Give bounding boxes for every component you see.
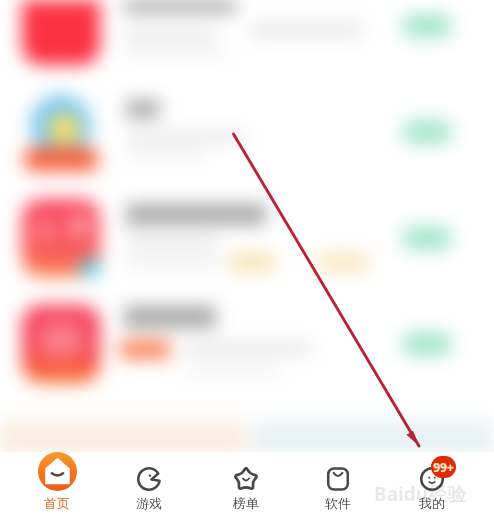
staticText: 首页 <box>44 495 70 511</box>
button[interactable]: 榜单 <box>201 452 291 519</box>
button[interactable]: 首页 <box>12 452 102 519</box>
button[interactable] <box>0 0 494 79</box>
other: 我的 <box>420 467 444 491</box>
button[interactable] <box>0 291 494 397</box>
other: 首页 <box>38 452 77 491</box>
button[interactable]: 游戏 <box>104 452 194 519</box>
button[interactable]: 软件 <box>293 452 383 519</box>
button[interactable]: 我的 <box>387 452 477 519</box>
button[interactable] <box>0 185 494 291</box>
staticText: 榜单 <box>233 495 259 511</box>
other: 榜单 <box>233 466 259 492</box>
staticText: 游戏 <box>136 495 162 511</box>
staticText: 我的 <box>419 495 445 511</box>
staticText: 99+ <box>433 459 454 475</box>
other: 游戏 <box>137 467 161 491</box>
staticText: Baidu经验 <box>374 481 467 507</box>
button[interactable] <box>0 79 494 185</box>
other: 软件 <box>326 467 350 491</box>
staticText: 软件 <box>325 495 351 511</box>
